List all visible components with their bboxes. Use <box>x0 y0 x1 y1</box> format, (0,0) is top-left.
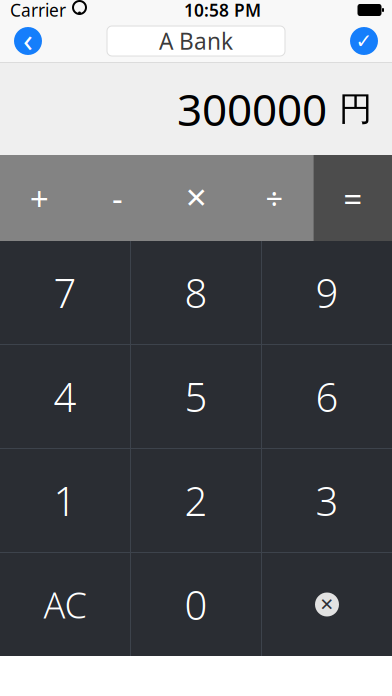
staticText: 5 <box>184 370 207 423</box>
staticText: 7 <box>53 266 76 319</box>
staticText: 3 <box>315 474 338 527</box>
staticText: = <box>343 176 362 220</box>
button[interactable]: A Bank <box>107 26 285 56</box>
button[interactable]: 6 <box>262 345 392 448</box>
staticText: ✕ <box>184 182 207 214</box>
staticText: ✓ <box>355 30 372 52</box>
button[interactable]: Divide <box>235 155 314 241</box>
staticText: 円 <box>339 88 372 129</box>
button[interactable]: Multiply <box>157 155 235 241</box>
button[interactable]: 8 <box>131 241 261 344</box>
button[interactable]: Delete <box>262 553 392 656</box>
button[interactable]: Minus <box>78 155 157 241</box>
button[interactable]: AC <box>0 553 130 656</box>
staticText: ‹ <box>23 18 33 61</box>
staticText: AC <box>43 581 86 628</box>
button[interactable]: 1 <box>0 449 130 552</box>
staticText: - <box>112 176 123 220</box>
button[interactable]: 7 <box>0 241 130 344</box>
button[interactable]: 3 <box>262 449 392 552</box>
staticText: Carrier <box>10 0 66 21</box>
button[interactable]: Equals <box>314 155 392 241</box>
staticText: A Bank <box>159 26 233 56</box>
staticText: ✕ <box>319 595 334 614</box>
button[interactable]: 0 <box>131 553 261 656</box>
button[interactable]: Done <box>342 20 386 62</box>
staticText: 6 <box>315 370 338 423</box>
staticText: 300000 <box>177 80 327 138</box>
staticText: ÷ <box>265 178 283 218</box>
staticText: + <box>30 176 49 220</box>
staticText: 4 <box>53 370 76 423</box>
button[interactable]: Plus <box>0 155 78 241</box>
button[interactable]: Back <box>6 20 50 62</box>
button[interactable]: 9 <box>262 241 392 344</box>
staticText: 10:58 PM <box>184 0 261 21</box>
staticText: 9 <box>315 266 338 319</box>
staticText: 1 <box>53 474 76 527</box>
button[interactable]: 2 <box>131 449 261 552</box>
button[interactable]: 4 <box>0 345 130 448</box>
button[interactable]: 5 <box>131 345 261 448</box>
staticText: 2 <box>184 474 207 527</box>
staticText: 8 <box>184 266 207 319</box>
staticText: 0 <box>184 578 207 631</box>
